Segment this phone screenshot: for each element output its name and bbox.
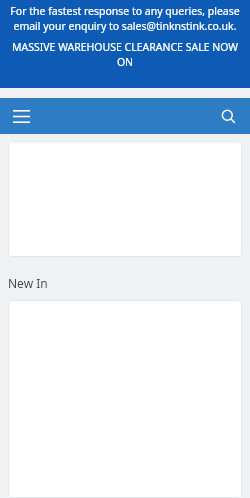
staticText: New In xyxy=(8,275,48,291)
button[interactable] xyxy=(8,300,242,498)
staticText: For the fastest response to any queries,… xyxy=(10,4,240,33)
button[interactable]: For the fastest response to any queries,… xyxy=(0,0,250,88)
button[interactable]: Open menu xyxy=(8,103,34,129)
staticText: MASSIVE WAREHOUSE CLEARANCE SALE NOW ON xyxy=(10,40,240,69)
button[interactable]: Search xyxy=(214,102,242,130)
button[interactable] xyxy=(8,141,242,257)
